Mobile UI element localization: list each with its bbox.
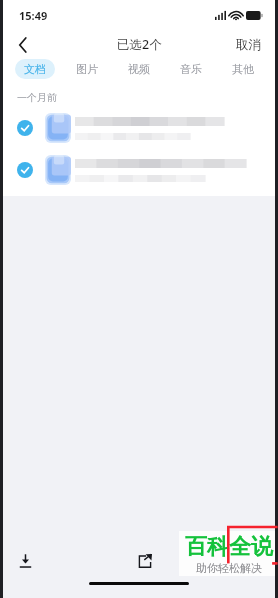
button[interactable]: 音乐	[171, 59, 211, 79]
staticText: 音乐	[180, 62, 202, 76]
button[interactable]: Share	[123, 543, 167, 578]
staticText: 文档	[24, 62, 46, 76]
staticText: 图片	[76, 62, 98, 76]
button[interactable]: Download	[3, 543, 47, 578]
staticText: 取消	[236, 37, 261, 53]
button[interactable]: Back	[3, 30, 43, 59]
staticText: 其他	[232, 62, 254, 76]
button[interactable]: 其他	[223, 59, 263, 79]
staticText: 助你轻松解决	[196, 561, 262, 575]
button[interactable]	[3, 149, 275, 191]
staticText: 15:49	[19, 8, 48, 23]
staticText: 视频	[128, 62, 150, 76]
button[interactable]	[3, 107, 275, 149]
staticText: 百科全说	[185, 533, 273, 561]
staticText: 一个月前	[17, 91, 57, 104]
button[interactable]: 视频	[119, 59, 159, 79]
staticText: 已选2个	[117, 36, 162, 53]
button[interactable]: 图片	[67, 59, 107, 79]
button[interactable]: 取消	[222, 30, 275, 59]
button[interactable]: 文档	[15, 59, 55, 79]
